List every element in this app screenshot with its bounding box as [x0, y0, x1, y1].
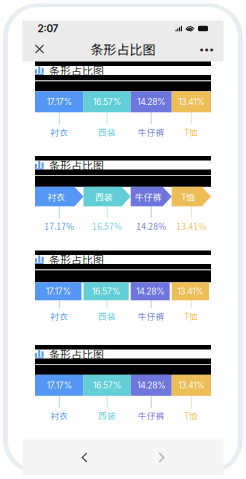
staticText: 14.28%: [137, 380, 165, 390]
staticText: 16.57%: [93, 380, 121, 390]
staticText: 13.41%: [177, 286, 203, 296]
staticText: 16.57%: [93, 97, 121, 107]
staticText: 17.17%: [47, 380, 72, 390]
staticText: 牛仔裤: [135, 190, 162, 203]
staticText: 牛仔裤: [138, 310, 165, 322]
staticText: 牛仔裤: [138, 409, 165, 422]
staticText: 条形占比图: [49, 63, 104, 78]
staticText: 13.41%: [176, 220, 206, 232]
staticText: 衬衣: [50, 126, 68, 138]
staticText: 西装: [98, 310, 116, 322]
staticText: 条形占比图: [49, 346, 104, 362]
staticText: 条形占比图: [90, 40, 155, 58]
staticText: 西装: [98, 409, 116, 422]
staticText: •••: [199, 43, 214, 55]
staticText: 13.41%: [178, 380, 204, 390]
staticText: 条形占比图: [49, 157, 104, 173]
staticText: 17.17%: [46, 286, 71, 296]
staticText: T恤: [184, 409, 198, 422]
staticText: 衬衣: [50, 310, 68, 322]
staticText: 14.28%: [136, 220, 166, 232]
staticText: 衬衣: [50, 409, 68, 422]
button[interactable]: Forward: [146, 445, 176, 469]
staticText: 14.28%: [137, 97, 165, 107]
button[interactable]: Close: [27, 37, 51, 61]
staticText: T恤: [184, 126, 198, 138]
staticText: 西装: [98, 126, 116, 138]
staticText: 16.57%: [92, 286, 120, 296]
staticText: 条形占比图: [49, 252, 104, 267]
staticText: 牛仔裤: [138, 126, 165, 138]
staticText: 17.17%: [44, 220, 74, 232]
button[interactable]: Back: [69, 445, 99, 469]
staticText: 西装: [95, 190, 113, 203]
staticText: 衬衣: [47, 190, 65, 203]
staticText: 2:07: [37, 22, 58, 35]
staticText: 13.41%: [178, 97, 204, 107]
button[interactable]: More: [194, 37, 218, 61]
staticText: 14.28%: [136, 286, 164, 296]
staticText: T恤: [181, 190, 195, 203]
staticText: 16.57%: [92, 220, 122, 232]
staticText: 17.17%: [47, 97, 72, 107]
staticText: T恤: [184, 310, 198, 322]
